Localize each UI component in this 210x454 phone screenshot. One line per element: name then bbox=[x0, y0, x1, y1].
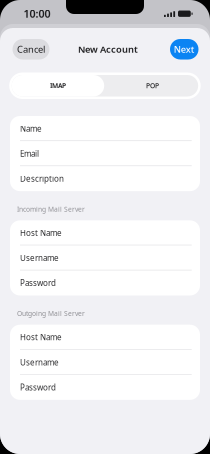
staticText: Password bbox=[20, 278, 56, 288]
staticText: Password bbox=[20, 382, 56, 393]
button[interactable]: Username bbox=[10, 245, 200, 270]
button[interactable]: Name bbox=[10, 116, 200, 141]
staticText: Host Name bbox=[20, 228, 62, 238]
staticText: Next bbox=[174, 43, 195, 55]
staticText: New Account bbox=[78, 43, 138, 55]
staticText: 10:00 bbox=[23, 6, 50, 21]
button[interactable]: Password bbox=[10, 375, 200, 400]
staticText: Cancel bbox=[17, 43, 45, 55]
button[interactable]: Host Name bbox=[10, 325, 200, 350]
button[interactable]: IMAP bbox=[12, 75, 104, 96]
button[interactable]: POP bbox=[107, 75, 198, 96]
button[interactable]: Cancel bbox=[12, 39, 49, 59]
staticText: POP bbox=[146, 81, 159, 90]
staticText: Description bbox=[20, 173, 64, 184]
button[interactable]: Next bbox=[170, 39, 198, 59]
staticText: Host Name bbox=[20, 332, 62, 342]
button[interactable]: Password bbox=[10, 270, 200, 296]
staticText: Email bbox=[20, 148, 39, 159]
staticText: Outgoing Mail Server bbox=[17, 309, 85, 318]
staticText: Name bbox=[20, 123, 42, 134]
button[interactable]: Host Name bbox=[10, 220, 200, 245]
button[interactable]: Description bbox=[10, 166, 200, 191]
staticText: IMAP bbox=[50, 81, 66, 90]
staticText: Username bbox=[20, 253, 59, 263]
staticText: Incoming Mail Server bbox=[17, 205, 85, 214]
button[interactable]: Username bbox=[10, 350, 200, 375]
button[interactable]: Email bbox=[10, 141, 200, 166]
staticText: Username bbox=[20, 357, 59, 368]
